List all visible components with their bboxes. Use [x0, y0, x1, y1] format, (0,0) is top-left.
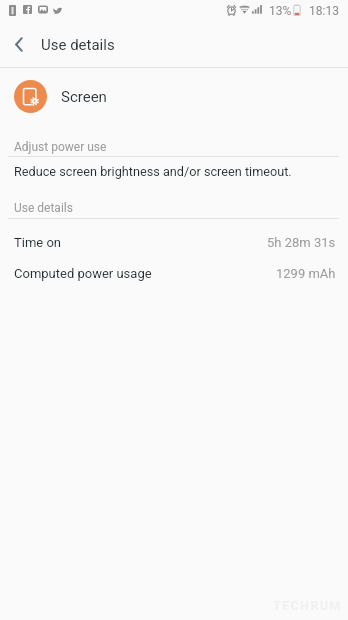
staticText: 13% [269, 4, 292, 18]
button[interactable]: Time on [0, 227, 348, 258]
button[interactable]: Computed power usage [0, 258, 348, 289]
button[interactable]: Screen [0, 68, 348, 125]
staticText: Adjust power use [14, 140, 107, 154]
staticText: 5h 28m 31s [267, 235, 336, 250]
staticText: Use details [14, 201, 73, 215]
button[interactable]: Reduce screen brightness and/or screen t… [0, 158, 348, 185]
staticText: Reduce screen brightness and/or screen t… [14, 164, 292, 179]
staticText: TECHRUM [273, 599, 342, 613]
staticText: Time on [14, 235, 62, 250]
staticText: Computed power usage [14, 266, 152, 281]
staticText: 1299 mAh [276, 266, 336, 281]
staticText: 18:13 [309, 4, 339, 18]
button[interactable]: Navigate up [5, 30, 33, 58]
staticText: Use details [41, 36, 115, 54]
staticText: Screen [61, 88, 107, 106]
